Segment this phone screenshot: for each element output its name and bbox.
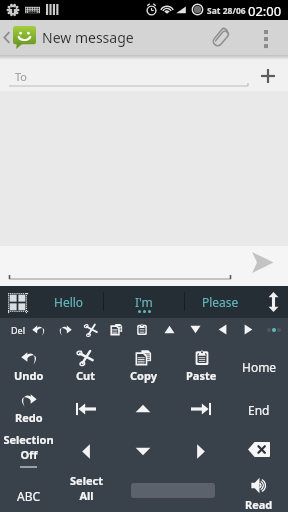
staticText: Hello xyxy=(54,294,84,310)
button[interactable]: Send xyxy=(250,250,274,274)
staticText: I'm xyxy=(135,294,153,310)
button[interactable]: Paste xyxy=(131,318,153,340)
staticText: To xyxy=(15,69,28,84)
button[interactable]: Del xyxy=(4,318,32,341)
staticText: Read xyxy=(245,497,273,512)
button[interactable]: More options xyxy=(243,20,288,55)
staticText: Off xyxy=(20,447,38,462)
staticText: Selection xyxy=(3,432,54,447)
staticText: Sat 28/06 xyxy=(207,5,246,17)
button[interactable]: Add recipient xyxy=(254,62,282,90)
button[interactable]: Undo xyxy=(0,341,57,383)
button[interactable]: Please xyxy=(185,286,255,318)
staticText: Redo xyxy=(15,410,43,425)
button[interactable]: Move up xyxy=(158,318,180,340)
staticText: End xyxy=(248,402,270,418)
button[interactable]: Hello xyxy=(35,286,103,318)
button[interactable]: Home xyxy=(230,341,288,383)
button[interactable]: Read xyxy=(230,469,288,512)
button[interactable]: End xyxy=(230,383,288,426)
staticText: New message xyxy=(42,28,134,47)
staticText: Select xyxy=(70,473,103,488)
button[interactable]: Line start xyxy=(57,383,114,426)
button[interactable]: Move left xyxy=(211,318,233,340)
staticText: ABC xyxy=(17,488,41,504)
button[interactable]: Paste xyxy=(172,341,230,383)
button[interactable]: Redo xyxy=(0,383,57,426)
button[interactable]: Copy xyxy=(114,341,172,383)
button[interactable]: ABC xyxy=(0,469,57,512)
button[interactable]: Select xyxy=(57,469,115,512)
button[interactable]: Space xyxy=(115,469,230,512)
button[interactable]: Cut xyxy=(80,318,102,340)
button[interactable]: Redo xyxy=(54,318,76,340)
button[interactable]: I'm xyxy=(104,286,184,318)
staticText: Undo xyxy=(14,368,44,383)
staticText: All xyxy=(79,488,94,503)
button[interactable]: Line end xyxy=(172,383,230,426)
button[interactable]: Keyboard options xyxy=(6,286,28,318)
staticText: 02:00 xyxy=(248,2,282,20)
button[interactable]: Move right xyxy=(237,318,259,340)
button[interactable]: Cut xyxy=(57,341,114,383)
button[interactable]: More xyxy=(262,318,286,341)
button[interactable]: Move down xyxy=(114,426,172,469)
staticText: Paste xyxy=(186,368,217,383)
button[interactable]: Page up xyxy=(114,383,172,426)
button[interactable]: Undo xyxy=(27,318,49,340)
staticText: Copy xyxy=(130,368,157,383)
button[interactable]: Move right xyxy=(172,426,230,469)
staticText: Home xyxy=(242,359,277,375)
button[interactable]: Attach xyxy=(197,20,243,55)
staticText: Cut xyxy=(76,368,95,383)
button[interactable]: Move down xyxy=(184,318,206,340)
button[interactable]: New message xyxy=(0,20,197,55)
staticText: Del xyxy=(11,324,25,336)
button[interactable]: Move left xyxy=(57,426,114,469)
button[interactable]: Expand suggestions xyxy=(262,286,284,318)
button[interactable]: Backspace xyxy=(230,426,288,469)
button[interactable]: Selection xyxy=(0,426,57,469)
button[interactable]: Copy xyxy=(106,318,128,340)
staticText: Please xyxy=(202,294,239,310)
